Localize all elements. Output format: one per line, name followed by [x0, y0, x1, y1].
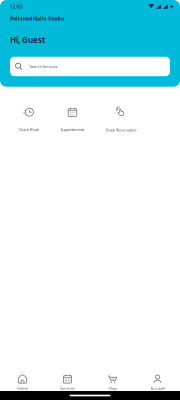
staticText: Search Services [30, 64, 58, 69]
staticText: Polished Nails Studio [10, 15, 64, 22]
button[interactable]: Book Reservation [99, 107, 143, 132]
staticText: Services [60, 386, 75, 391]
button[interactable]: Shop [90, 374, 135, 391]
button[interactable]: Services [45, 374, 90, 391]
staticText: Home [17, 386, 28, 391]
button[interactable]: Home [0, 374, 45, 391]
button[interactable]: Quick Book [12, 107, 46, 132]
staticText: Shop [108, 386, 116, 391]
staticText: Appointments [60, 127, 84, 132]
staticText: Quick Book [19, 127, 39, 132]
button[interactable]: Appointments [53, 107, 91, 132]
staticText: Hi, Guest [10, 35, 45, 45]
button[interactable]: Search Services [0, 57, 170, 76]
staticText: Account [150, 386, 164, 391]
staticText: Book Reservation [106, 127, 136, 132]
staticText: 12:45 [9, 3, 22, 10]
button[interactable]: Account [135, 374, 180, 391]
